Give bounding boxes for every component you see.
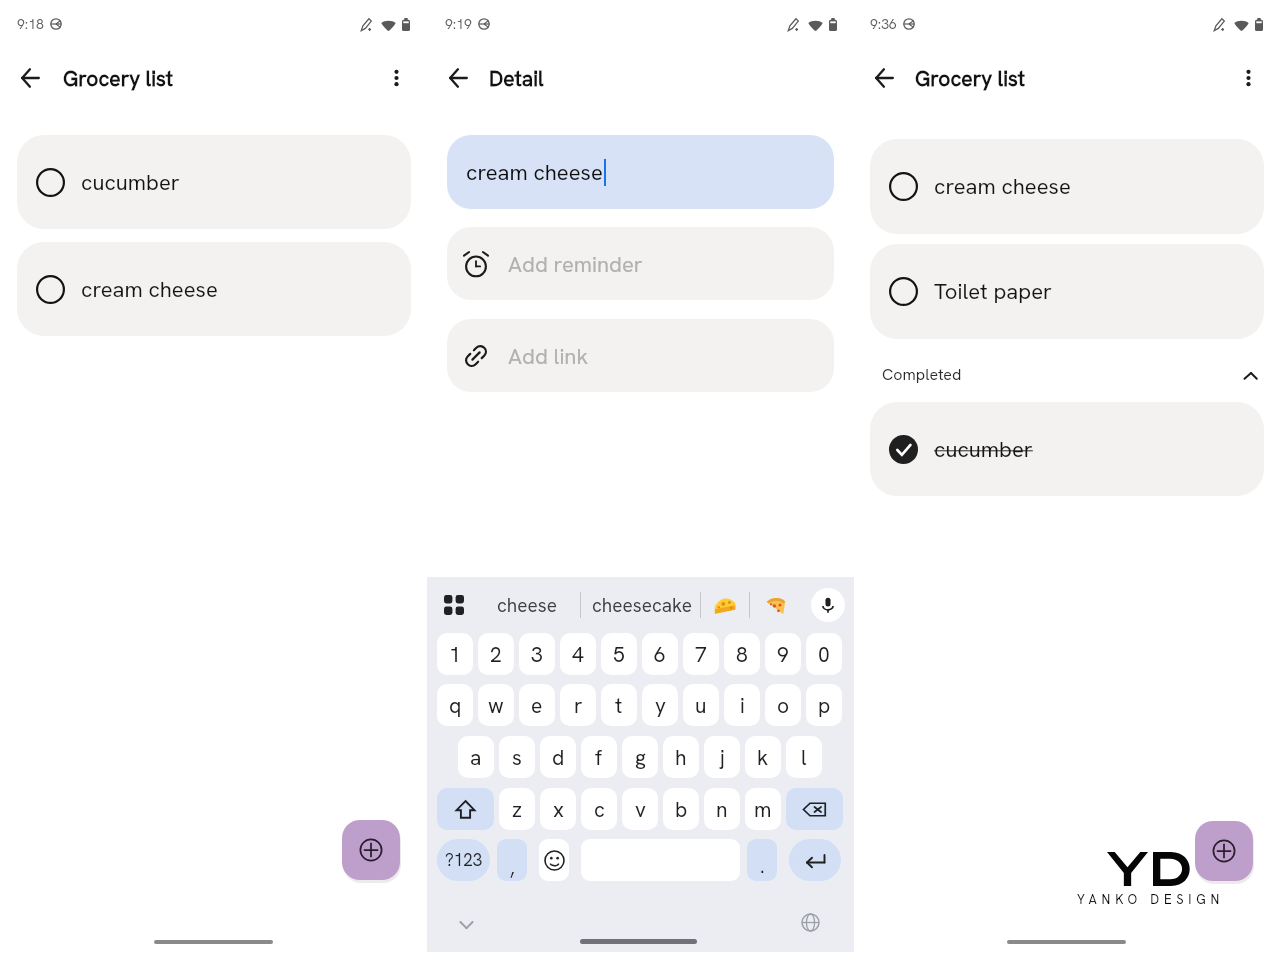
staticText: Completed	[882, 364, 962, 385]
button[interactable]: Enter	[789, 839, 841, 881]
staticText: o	[777, 692, 790, 719]
staticText: 1	[449, 641, 461, 668]
button[interactable]: Add reminder	[447, 227, 834, 300]
button[interactable]: Add item	[342, 820, 400, 880]
staticText: Grocery list	[63, 65, 174, 92]
staticText: 9:19	[445, 15, 472, 33]
button[interactable]: Toilet paper	[870, 244, 1264, 339]
staticText: cucumber	[934, 435, 1033, 464]
button[interactable]: k	[745, 736, 781, 778]
button[interactable]: ,	[497, 839, 527, 881]
staticText: x	[553, 796, 564, 823]
button[interactable]: cucumber	[870, 402, 1264, 496]
staticText: v	[635, 796, 646, 823]
button[interactable]: l	[786, 736, 822, 778]
button[interactable]: 3	[519, 633, 555, 675]
button[interactable]: More options	[376, 58, 416, 98]
staticText: t	[615, 692, 623, 719]
staticText: q	[449, 692, 462, 719]
button[interactable]: e	[519, 684, 555, 726]
staticText: i	[740, 692, 745, 719]
button[interactable]: d	[540, 736, 576, 778]
staticText: Detail	[489, 65, 544, 92]
button[interactable]: j	[704, 736, 740, 778]
button[interactable]: t	[601, 684, 637, 726]
staticText: cream cheese	[934, 172, 1071, 201]
staticText: cream cheese	[466, 158, 603, 187]
button[interactable]: Emoji	[539, 839, 569, 881]
staticText: ,	[510, 856, 515, 881]
button[interactable]: Change language	[801, 913, 820, 932]
staticText: n	[716, 796, 728, 823]
button[interactable]: 4	[560, 633, 596, 675]
staticText: l	[801, 744, 807, 771]
staticText: 0	[818, 641, 830, 668]
button[interactable]: a	[458, 736, 494, 778]
button[interactable]: i	[724, 684, 760, 726]
staticText: 9:36	[870, 15, 897, 33]
button[interactable]: Toolbar	[444, 595, 464, 615]
button[interactable]: f	[581, 736, 617, 778]
staticText: h	[675, 744, 687, 771]
button[interactable]: u	[683, 684, 719, 726]
staticText: u	[695, 692, 707, 719]
staticText: 7	[695, 641, 707, 668]
button[interactable]: 9	[765, 633, 801, 675]
button[interactable]: y	[642, 684, 678, 726]
button[interactable]: 1	[437, 633, 473, 675]
button[interactable]: v	[622, 788, 658, 830]
staticText: a	[470, 744, 482, 771]
staticText: d	[552, 744, 565, 771]
button[interactable]: x	[540, 788, 576, 830]
button[interactable]: s	[499, 736, 535, 778]
staticText: .	[760, 854, 765, 879]
button[interactable]: 2	[478, 633, 514, 675]
button[interactable]: cream cheese	[17, 242, 411, 336]
button[interactable]: Back	[862, 56, 906, 100]
button[interactable]: m	[745, 788, 781, 830]
button[interactable]: Back	[8, 56, 52, 100]
button[interactable]: g	[622, 736, 658, 778]
button[interactable]: .	[747, 839, 777, 881]
button[interactable]: Shift	[437, 788, 494, 830]
staticText: p	[818, 692, 831, 719]
staticText: m	[754, 796, 772, 823]
button[interactable]: More options	[1228, 58, 1268, 98]
button[interactable]: 5	[601, 633, 637, 675]
staticText: s	[512, 744, 522, 771]
staticText: YANKO DESIGN	[1077, 891, 1225, 908]
staticText: e	[531, 692, 543, 719]
button[interactable]: w	[478, 684, 514, 726]
staticText: 5	[613, 641, 625, 668]
button[interactable]: Add item	[1195, 821, 1253, 881]
button[interactable]: 8	[724, 633, 760, 675]
staticText: cream cheese	[81, 275, 218, 304]
button[interactable]: n	[704, 788, 740, 830]
button[interactable]: b	[663, 788, 699, 830]
staticText: cheese	[497, 593, 557, 618]
button[interactable]: Voice input	[811, 588, 845, 622]
button[interactable]: q	[437, 684, 473, 726]
button[interactable]: c	[581, 788, 617, 830]
button[interactable]: Back	[436, 56, 480, 100]
button[interactable]: p	[806, 684, 842, 726]
button[interactable]: h	[663, 736, 699, 778]
button[interactable]: cream cheese	[447, 135, 834, 209]
button[interactable]: Completed	[870, 347, 1264, 402]
button[interactable]: 6	[642, 633, 678, 675]
button[interactable]: Backspace	[786, 788, 843, 830]
button[interactable]: ?123	[437, 839, 490, 881]
button[interactable]: Hide keyboard	[457, 916, 476, 935]
button[interactable]: r	[560, 684, 596, 726]
staticText: ?123	[445, 849, 483, 871]
button[interactable]: o	[765, 684, 801, 726]
staticText: g	[635, 744, 646, 771]
staticText: Add reminder	[508, 250, 643, 279]
button[interactable]: Add link	[447, 319, 834, 392]
button[interactable]: 7	[683, 633, 719, 675]
button[interactable]: z	[499, 788, 535, 830]
button[interactable]: 0	[806, 633, 842, 675]
button[interactable]: cream cheese	[870, 139, 1264, 234]
button[interactable]: cucumber	[17, 135, 411, 229]
